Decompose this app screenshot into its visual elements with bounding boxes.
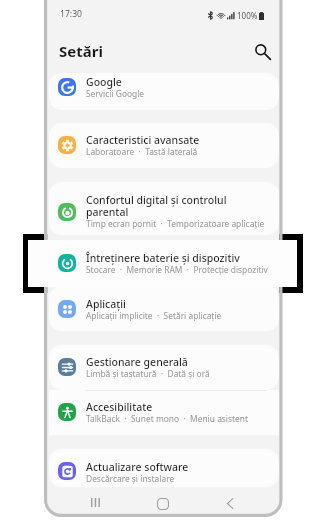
button[interactable] [49,345,279,390]
staticText: Actualizare software [86,460,189,474]
button[interactable] [49,182,279,235]
staticText: Caracteristici avansate [86,133,200,147]
staticText: Limbă și tastatură · Dată și oră [86,368,210,379]
staticText: Întreținere baterie și dispozitiv [86,251,240,265]
staticText: 100% [237,10,258,21]
button[interactable] [49,449,279,487]
button[interactable]: Back [225,498,235,509]
staticText: Stocare · Memorie RAM · Protecție dispoz… [86,264,268,275]
staticText: Gestionare generală [86,355,188,369]
staticText: parental [86,205,129,219]
button[interactable]: Recents [91,498,102,507]
button[interactable]: Search [252,41,272,61]
staticText: TalkBack · Sunet mono · Meniu asistent [86,413,249,424]
staticText: Servicii Google [86,88,145,99]
button[interactable] [49,286,279,331]
staticText: Aplicații [86,297,126,311]
button[interactable] [28,240,297,287]
staticText: 17:30 [60,8,82,20]
staticText: Google [86,75,122,89]
staticText: Confortul digital și controlul [86,193,227,207]
staticText: Laboratoare · Tastă laterală [86,146,198,157]
staticText: Aplicații implicite · Setări aplicație [86,310,222,321]
button[interactable]: Home [157,498,169,510]
staticText: Accesibilitate [86,400,153,414]
staticText: Descărcare și instalare [86,473,175,484]
staticText: Setări [59,41,103,61]
button[interactable] [49,123,279,168]
button[interactable] [49,73,279,110]
staticText: Timp ecran pornit · Temporizatoare aplic… [86,218,265,229]
button[interactable] [49,390,279,435]
